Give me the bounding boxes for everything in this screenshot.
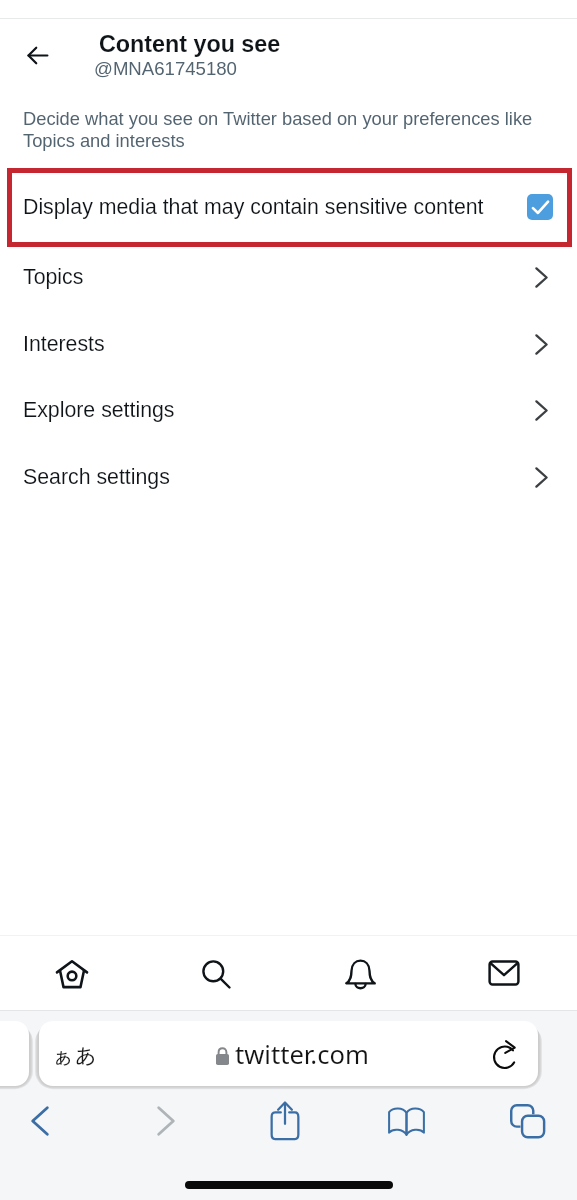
button[interactable]: Explore settings xyxy=(0,377,577,443)
button[interactable]: Search settings xyxy=(0,444,577,510)
button[interactable]: Topics xyxy=(0,244,577,310)
button[interactable]: Interests xyxy=(0,311,577,377)
staticText: Explore settings xyxy=(23,398,535,422)
button[interactable]: Search xyxy=(180,937,252,1011)
staticText: Display media that may contain sensitive… xyxy=(23,195,527,219)
staticText: Content you see xyxy=(99,31,281,57)
button[interactable]: Tabs xyxy=(499,1093,555,1149)
button[interactable]: Back xyxy=(12,30,62,80)
button[interactable]: Display media that may contain sensitive… xyxy=(0,171,577,243)
staticText: twitter.com xyxy=(235,1037,369,1072)
button[interactable]: Forward xyxy=(138,1093,194,1149)
staticText: Decide what you see on Twitter based on … xyxy=(23,108,544,151)
button[interactable]: Home xyxy=(36,937,108,1011)
staticText: Interests xyxy=(23,332,535,356)
staticText: @MNA61745180 xyxy=(94,58,237,79)
button[interactable]: Address bar twitter.com xyxy=(39,1021,538,1086)
button[interactable]: Notifications xyxy=(324,937,396,1011)
button[interactable]: Bookmarks xyxy=(378,1093,434,1149)
button[interactable]: Share xyxy=(257,1092,313,1148)
button[interactable]: Back xyxy=(12,1093,68,1149)
staticText: Topics xyxy=(23,265,535,289)
button[interactable]: Messages xyxy=(468,936,540,1010)
button[interactable]: Reload page xyxy=(480,1027,532,1079)
staticText: Search settings xyxy=(23,465,535,489)
staticText: ぁあ xyxy=(52,1045,97,1067)
